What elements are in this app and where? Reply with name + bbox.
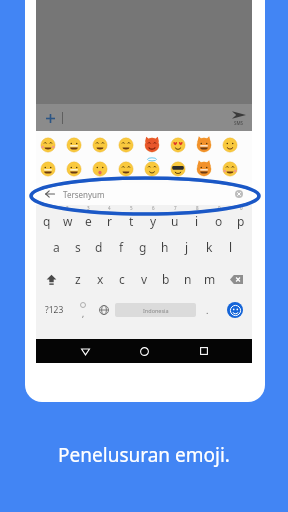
staticText: v xyxy=(141,271,148,287)
button[interactable]: 8 xyxy=(186,205,208,231)
button[interactable]: 9 xyxy=(208,205,230,231)
button[interactable] xyxy=(117,160,135,178)
staticText: f xyxy=(119,239,124,255)
button[interactable]: l xyxy=(220,231,242,263)
button[interactable]: Indonesia xyxy=(115,303,196,317)
staticText: r xyxy=(107,213,112,229)
button[interactable]: q xyxy=(36,205,57,231)
button[interactable]: Back xyxy=(43,187,57,201)
button[interactable]: 3 xyxy=(78,205,99,231)
button[interactable]: f xyxy=(110,231,132,263)
button[interactable]: 2 xyxy=(57,205,78,231)
button[interactable]: 5 xyxy=(120,205,142,231)
staticText: SMS xyxy=(234,120,244,126)
button[interactable]: n xyxy=(177,263,199,295)
staticText: 7 xyxy=(174,205,177,211)
staticText: u xyxy=(171,213,179,229)
staticText: b xyxy=(162,271,170,287)
button[interactable] xyxy=(195,136,213,154)
staticText: 4 xyxy=(108,205,111,211)
button[interactable]: s xyxy=(67,231,88,263)
button[interactable]: d xyxy=(88,231,110,263)
staticText: 3 xyxy=(87,205,90,211)
staticText: z xyxy=(75,271,81,287)
staticText: o xyxy=(215,213,223,229)
staticText: q xyxy=(43,213,51,229)
button[interactable]: Back xyxy=(74,340,96,362)
staticText: p xyxy=(237,213,245,229)
staticText: t xyxy=(129,213,134,229)
button[interactable]: Emoji keyboard xyxy=(218,295,252,325)
staticText: , xyxy=(82,308,85,319)
button[interactable] xyxy=(221,160,239,178)
staticText: . xyxy=(206,304,209,316)
staticText: ?123 xyxy=(45,304,64,316)
button[interactable] xyxy=(221,136,239,154)
button[interactable]: b xyxy=(155,263,177,295)
staticText: k xyxy=(206,239,213,255)
staticText: d xyxy=(95,239,103,255)
button[interactable]: j xyxy=(176,231,198,263)
staticText: i xyxy=(195,213,199,229)
staticText: e xyxy=(85,213,92,229)
staticText: a xyxy=(53,239,60,255)
button[interactable]: . xyxy=(196,295,218,325)
staticText: x xyxy=(97,271,104,287)
button[interactable] xyxy=(117,136,135,154)
button[interactable] xyxy=(39,136,57,154)
staticText: l xyxy=(229,239,233,255)
staticText: h xyxy=(161,239,169,255)
staticText: 0 xyxy=(240,205,243,211)
button[interactable] xyxy=(65,160,83,178)
button[interactable]: k xyxy=(198,231,220,263)
staticText: 5 xyxy=(130,205,133,211)
button[interactable] xyxy=(143,160,161,178)
staticText: Indonesia xyxy=(143,307,169,314)
button[interactable]: 7 xyxy=(164,205,186,231)
button[interactable] xyxy=(91,136,109,154)
button[interactable]: a xyxy=(46,231,67,263)
button[interactable]: Change language xyxy=(93,295,115,325)
button[interactable]: Recent apps xyxy=(193,340,215,362)
button[interactable]: m xyxy=(199,263,221,295)
staticText: c xyxy=(119,271,125,287)
button[interactable] xyxy=(169,160,187,178)
button[interactable]: x xyxy=(89,263,111,295)
staticText: 6 xyxy=(152,205,155,211)
button[interactable] xyxy=(39,160,57,178)
button[interactable]: Shift xyxy=(36,263,67,295)
staticText: w xyxy=(63,213,73,229)
button[interactable]: 0 xyxy=(230,205,252,231)
button[interactable]: Send SMS xyxy=(232,110,246,126)
button[interactable]: c xyxy=(111,263,133,295)
staticText: 2 xyxy=(66,205,69,211)
button[interactable]: g xyxy=(132,231,154,263)
staticText: Tersenyum xyxy=(63,189,105,200)
button[interactable] xyxy=(195,160,213,178)
button[interactable]: Backspace xyxy=(221,263,252,295)
staticText: 8 xyxy=(196,205,199,211)
button[interactable]: Emoji and comma xyxy=(72,295,93,325)
button[interactable]: Home xyxy=(133,340,155,362)
staticText: Penelusuran emoji. xyxy=(0,442,288,468)
button[interactable] xyxy=(91,160,109,178)
staticText: j xyxy=(185,239,189,255)
button[interactable]: ?123 xyxy=(36,295,72,325)
staticText: 9 xyxy=(218,205,221,211)
button[interactable]: z xyxy=(67,263,89,295)
button[interactable]: h xyxy=(154,231,176,263)
button[interactable]: 6 xyxy=(142,205,164,231)
button[interactable] xyxy=(143,136,161,154)
button[interactable]: v xyxy=(133,263,155,295)
staticText: g xyxy=(139,239,147,255)
button[interactable]: Add attachment xyxy=(41,109,59,127)
button[interactable] xyxy=(169,136,187,154)
button[interactable] xyxy=(65,136,83,154)
staticText: m xyxy=(204,271,216,287)
staticText: y xyxy=(150,213,157,229)
staticText: n xyxy=(184,271,192,287)
button[interactable]: Clear xyxy=(232,187,246,201)
button[interactable]: Back xyxy=(36,183,252,205)
staticText: s xyxy=(75,239,81,255)
button[interactable]: 4 xyxy=(99,205,120,231)
